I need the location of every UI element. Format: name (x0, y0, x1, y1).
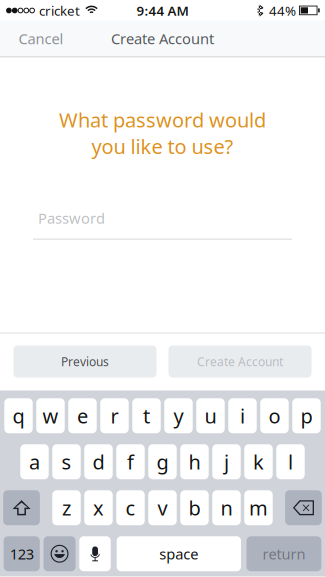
button[interactable]: p (292, 398, 321, 433)
button[interactable]: Emoji (43, 536, 76, 571)
staticText: f (127, 448, 134, 475)
button[interactable]: e (68, 398, 97, 433)
staticText: l (288, 448, 293, 475)
button[interactable]: w (36, 398, 65, 433)
button[interactable]: Dictation (79, 536, 111, 571)
button[interactable]: l (276, 444, 305, 479)
button[interactable]: i (228, 398, 257, 433)
staticText: Create Account (111, 29, 214, 48)
staticText: 123 (10, 544, 34, 563)
button[interactable]: u (196, 398, 225, 433)
button[interactable]: q (4, 398, 33, 433)
button[interactable]: b (180, 490, 209, 525)
staticText: 9:44 AM (136, 2, 188, 19)
staticText: h (188, 448, 200, 475)
staticText: j (224, 448, 229, 475)
button[interactable]: Cancel (0, 20, 75, 56)
button[interactable]: r (100, 398, 129, 433)
staticText: x (93, 494, 104, 521)
button[interactable]: g (148, 444, 177, 479)
button[interactable]: k (244, 444, 273, 479)
button[interactable]: h (180, 444, 209, 479)
staticText: a (29, 448, 40, 475)
button[interactable]: f (116, 444, 145, 479)
staticText: m (249, 494, 268, 521)
button[interactable]: m (244, 490, 273, 525)
button[interactable]: s (52, 444, 81, 479)
button[interactable]: v (148, 490, 177, 525)
staticText: you like to use? (91, 133, 233, 160)
button[interactable]: Create Account (168, 345, 311, 377)
staticText: t (143, 402, 150, 429)
button[interactable]: Previous (13, 345, 156, 377)
button[interactable]: t (132, 398, 161, 433)
staticText: k (253, 448, 264, 475)
staticText: p (300, 402, 312, 429)
button[interactable]: 123 (4, 536, 40, 571)
staticText: e (77, 402, 88, 429)
staticText: Create Account (197, 353, 283, 369)
staticText: q (12, 402, 24, 429)
button[interactable]: z (52, 490, 81, 525)
button[interactable]: j (212, 444, 241, 479)
staticText: Password (38, 208, 105, 228)
staticText: v (157, 494, 167, 521)
staticText: return (262, 544, 305, 563)
staticText: r (110, 402, 118, 429)
staticText: cricket (39, 2, 80, 19)
staticText: n (220, 494, 232, 521)
staticText: space (159, 544, 198, 563)
button[interactable]: Delete (285, 490, 322, 525)
button[interactable]: c (116, 490, 145, 525)
staticText: Cancel (18, 29, 63, 48)
staticText: i (240, 402, 245, 429)
button[interactable]: return (246, 536, 321, 571)
staticText: 44% (269, 2, 296, 19)
staticText: z (62, 494, 71, 521)
button[interactable]: space (117, 536, 241, 571)
staticText: y (173, 402, 183, 429)
staticText: o (268, 402, 280, 429)
staticText: What password would (59, 106, 266, 133)
button[interactable]: d (84, 444, 113, 479)
staticText: Previous (61, 353, 109, 369)
button[interactable]: Shift (3, 490, 40, 525)
button[interactable]: n (212, 490, 241, 525)
staticText: c (125, 494, 135, 521)
button[interactable]: x (84, 490, 113, 525)
button[interactable]: o (260, 398, 289, 433)
staticText: w (42, 402, 58, 429)
staticText: s (61, 448, 71, 475)
button[interactable]: y (164, 398, 193, 433)
staticText: b (188, 494, 200, 521)
button[interactable]: a (20, 444, 49, 479)
staticText: d (92, 448, 104, 475)
staticText: u (204, 402, 216, 429)
staticText: g (156, 448, 168, 475)
